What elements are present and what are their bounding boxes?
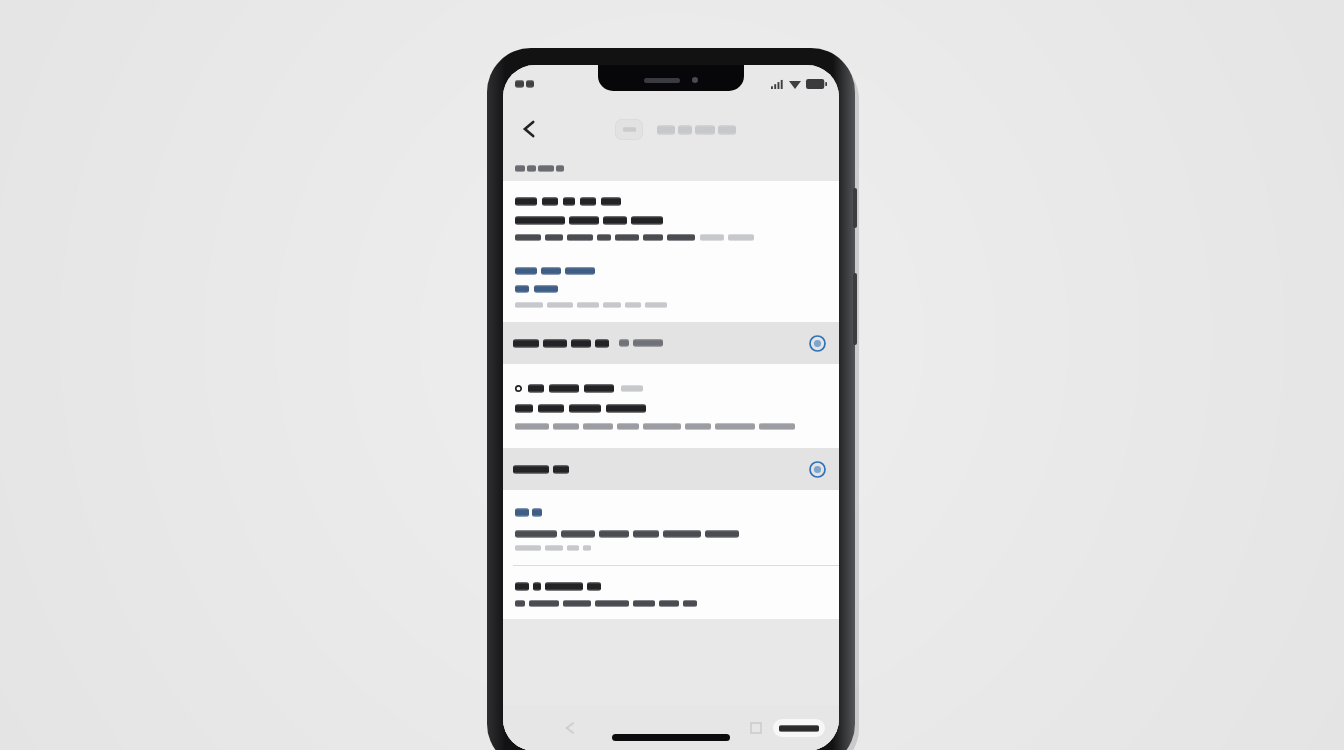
button[interactable]: Back <box>557 715 583 741</box>
button[interactable] <box>773 719 825 737</box>
button[interactable] <box>503 181 839 322</box>
button[interactable]: Back <box>513 112 547 146</box>
button[interactable] <box>503 155 839 181</box>
button[interactable] <box>503 364 839 448</box>
button[interactable] <box>503 490 839 565</box>
button[interactable]: More information <box>503 448 839 490</box>
button[interactable]: Recent apps <box>745 717 767 739</box>
button[interactable]: More information <box>804 456 831 483</box>
button[interactable]: More information <box>503 322 839 364</box>
button[interactable] <box>503 566 839 619</box>
button[interactable]: More information <box>804 330 831 357</box>
